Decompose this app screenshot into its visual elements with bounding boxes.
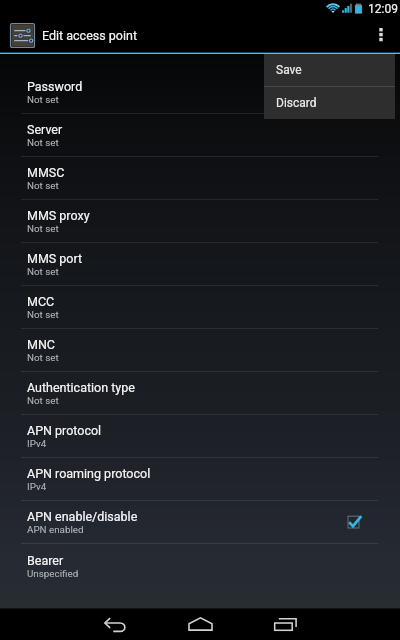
staticText: APN roaming protocol bbox=[27, 466, 151, 481]
button[interactable]: Authentication type bbox=[0, 372, 400, 415]
staticText: Not set bbox=[27, 223, 59, 234]
staticText: Not set bbox=[27, 180, 59, 191]
staticText: Not set bbox=[27, 266, 59, 277]
button[interactable]: MMS port bbox=[0, 243, 400, 286]
staticText: MMS proxy bbox=[27, 208, 90, 223]
staticText: Not set bbox=[27, 352, 59, 363]
button[interactable]: APN protocol bbox=[0, 415, 400, 458]
button[interactable]: MMSC bbox=[0, 157, 400, 200]
staticText: MMSC bbox=[27, 165, 65, 180]
staticText: APN enabled bbox=[27, 524, 84, 535]
button[interactable]: Bearer bbox=[0, 544, 400, 587]
button[interactable]: Discard bbox=[264, 87, 395, 119]
staticText: MNC bbox=[27, 337, 55, 352]
staticText: Not set bbox=[27, 137, 59, 148]
button[interactable]: Save bbox=[264, 54, 395, 86]
button[interactable]: Home bbox=[158, 609, 243, 640]
staticText: MCC bbox=[27, 294, 55, 309]
staticText: IPv4 bbox=[27, 438, 47, 449]
button[interactable]: MMS proxy bbox=[0, 200, 400, 243]
staticText: Password bbox=[27, 79, 83, 94]
button[interactable]: MNC bbox=[0, 329, 400, 372]
staticText: Authentication type bbox=[27, 380, 135, 395]
button[interactable]: Server bbox=[0, 114, 400, 157]
staticText: Not set bbox=[27, 94, 59, 105]
button[interactable]: APN roaming protocol bbox=[0, 458, 400, 501]
button[interactable]: Edit access point bbox=[0, 23, 137, 48]
staticText: IPv4 bbox=[27, 481, 47, 492]
staticText: Bearer bbox=[27, 553, 64, 568]
staticText: Server bbox=[27, 122, 63, 137]
button[interactable]: Back bbox=[73, 609, 158, 640]
staticText: MMS port bbox=[27, 251, 83, 266]
staticText: 12:09 bbox=[368, 2, 398, 16]
staticText: Not set bbox=[27, 395, 59, 406]
staticText: APN enable/disable bbox=[27, 509, 138, 524]
staticText: Save bbox=[276, 63, 302, 77]
button[interactable]: More options bbox=[362, 18, 400, 52]
staticText: Edit access point bbox=[42, 28, 137, 43]
staticText: Discard bbox=[276, 96, 317, 110]
staticText: Not set bbox=[27, 309, 59, 320]
staticText: Unspecified bbox=[27, 568, 79, 579]
button[interactable]: Recent apps bbox=[243, 609, 328, 640]
staticText: APN protocol bbox=[27, 423, 102, 438]
button[interactable]: Password bbox=[0, 71, 400, 114]
button[interactable]: APN enable/disable bbox=[0, 501, 400, 544]
button[interactable]: MCC bbox=[0, 286, 400, 329]
